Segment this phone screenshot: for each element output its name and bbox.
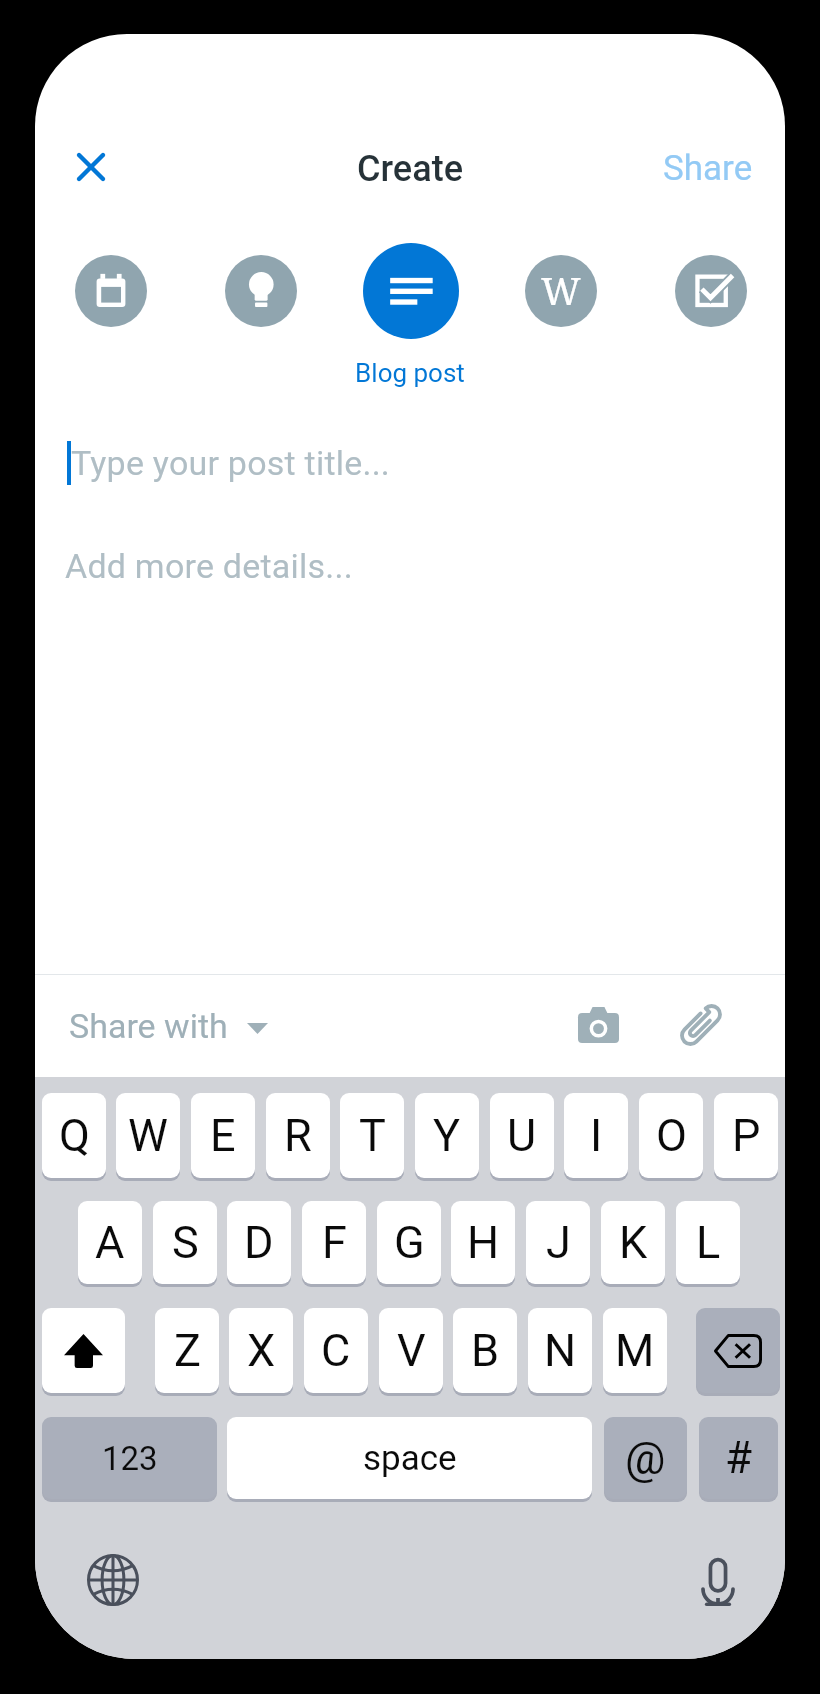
- staticText: J: [546, 1216, 571, 1269]
- button[interactable]: K: [601, 1201, 665, 1284]
- staticText: Add more details...: [65, 546, 353, 586]
- button[interactable]: T: [340, 1093, 404, 1178]
- button[interactable]: U: [490, 1093, 554, 1178]
- staticText: Blog post: [355, 358, 465, 388]
- button[interactable]: Close: [56, 132, 126, 202]
- button[interactable]: Voice input: [683, 1546, 753, 1616]
- button[interactable]: Share with: [55, 994, 282, 1058]
- button[interactable]: P: [714, 1093, 778, 1178]
- button[interactable]: V: [379, 1308, 443, 1393]
- staticText: F: [322, 1216, 347, 1269]
- button[interactable]: S: [153, 1201, 217, 1284]
- button[interactable]: H: [451, 1201, 515, 1284]
- button[interactable]: Y: [415, 1093, 479, 1178]
- staticText: Q: [59, 1109, 90, 1162]
- staticText: Z: [174, 1324, 201, 1377]
- staticText: @: [625, 1432, 666, 1485]
- staticText: W: [128, 1109, 168, 1162]
- staticText: G: [394, 1216, 425, 1269]
- button[interactable]: #: [699, 1417, 778, 1499]
- button[interactable]: W: [116, 1093, 180, 1178]
- staticText: N: [544, 1324, 577, 1377]
- button[interactable]: 123: [42, 1417, 217, 1499]
- staticText: Share with: [69, 1006, 228, 1046]
- button[interactable]: Task: [675, 255, 747, 327]
- button[interactable]: Share: [645, 140, 771, 197]
- button[interactable]: Change keyboard language: [78, 1545, 148, 1615]
- staticText: S: [172, 1216, 199, 1269]
- staticText: X: [247, 1324, 276, 1377]
- button[interactable]: Take a photo: [563, 990, 633, 1060]
- button[interactable]: D: [227, 1201, 291, 1284]
- button[interactable]: R: [266, 1093, 330, 1178]
- staticText: Create: [357, 148, 463, 190]
- button[interactable]: L: [676, 1201, 740, 1284]
- button[interactable]: Event: [75, 255, 147, 327]
- staticText: T: [359, 1109, 386, 1162]
- button[interactable]: Attach file: [666, 990, 736, 1060]
- staticText: U: [507, 1109, 537, 1162]
- button[interactable]: I: [564, 1093, 628, 1178]
- staticText: C: [321, 1324, 351, 1377]
- button[interactable]: @: [604, 1417, 687, 1499]
- staticText: R: [284, 1109, 312, 1162]
- button[interactable]: Q: [42, 1093, 106, 1178]
- staticText: K: [619, 1216, 648, 1269]
- button[interactable]: N: [528, 1308, 592, 1393]
- button[interactable]: Wiki page: [525, 255, 597, 327]
- button[interactable]: Z: [155, 1308, 219, 1393]
- staticText: #: [725, 1432, 753, 1484]
- staticText: space: [363, 1438, 457, 1479]
- staticText: O: [656, 1109, 687, 1162]
- button[interactable]: space: [227, 1417, 592, 1499]
- staticText: I: [590, 1109, 603, 1162]
- button[interactable]: J: [526, 1201, 590, 1284]
- button[interactable]: F: [302, 1201, 366, 1284]
- button[interactable]: B: [453, 1308, 517, 1393]
- button[interactable]: E: [191, 1093, 255, 1178]
- button[interactable]: O: [639, 1093, 703, 1178]
- staticText: Y: [433, 1109, 461, 1162]
- button[interactable]: Backspace: [696, 1308, 780, 1393]
- staticText: V: [397, 1324, 426, 1377]
- button[interactable]: C: [304, 1308, 368, 1393]
- staticText: D: [244, 1216, 274, 1269]
- staticText: L: [696, 1216, 721, 1269]
- button[interactable]: Blog post: [363, 243, 459, 339]
- button[interactable]: Shift: [42, 1308, 125, 1393]
- staticText: W: [541, 264, 581, 316]
- staticText: H: [467, 1216, 500, 1269]
- staticText: B: [471, 1324, 500, 1377]
- button[interactable]: X: [229, 1308, 293, 1393]
- staticText: P: [732, 1109, 761, 1162]
- button[interactable]: G: [377, 1201, 441, 1284]
- staticText: E: [210, 1109, 236, 1162]
- button[interactable]: Idea: [225, 255, 297, 327]
- staticText: 123: [102, 1439, 158, 1478]
- staticText: Type your post title...: [71, 443, 391, 483]
- button[interactable]: A: [78, 1201, 142, 1284]
- staticText: Share: [663, 148, 753, 189]
- button[interactable]: M: [603, 1308, 667, 1393]
- staticText: A: [95, 1216, 125, 1269]
- staticText: M: [615, 1324, 655, 1377]
